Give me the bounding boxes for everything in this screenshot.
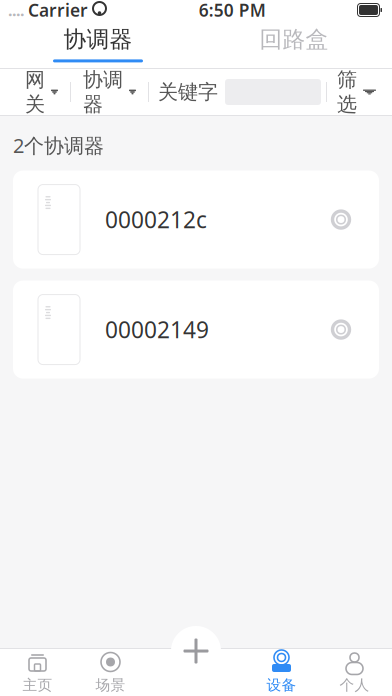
staticText: 网关 (25, 67, 45, 116)
staticText: .... (8, 0, 24, 21)
staticText: 协调器 (83, 67, 123, 116)
staticText: 关键字 (158, 80, 218, 104)
button[interactable]: 0000212c (13, 171, 379, 269)
button[interactable]: 回路盒 (196, 22, 392, 66)
button[interactable]: 设备 (245, 649, 318, 696)
staticText: 主页 (22, 676, 52, 694)
button[interactable]: 网关 (13, 74, 70, 110)
staticText: 筛选 (337, 67, 357, 116)
staticText: 设备 (266, 676, 296, 694)
staticText: 协调器 (63, 26, 132, 53)
button[interactable]: 协调器 (0, 22, 196, 66)
button[interactable]: 场景 (74, 649, 147, 696)
button[interactable]: 个人 (318, 649, 391, 696)
button[interactable]: 协调器 (71, 74, 148, 110)
staticText: 00002149 (105, 314, 209, 345)
staticText: 场景 (95, 676, 125, 694)
staticText: 0000212c (105, 204, 207, 235)
button[interactable]: 筛选 (327, 74, 386, 110)
staticText: 个人 (339, 676, 369, 694)
button[interactable]: Add (171, 626, 221, 676)
button[interactable]: 00002149 (13, 281, 379, 379)
staticText: 6:50 PM (199, 0, 266, 21)
staticText: Carrier (28, 0, 88, 21)
staticText: 2个协调器 (13, 132, 104, 159)
button[interactable]: 主页 (1, 649, 74, 696)
staticText: 回路盒 (259, 26, 328, 53)
